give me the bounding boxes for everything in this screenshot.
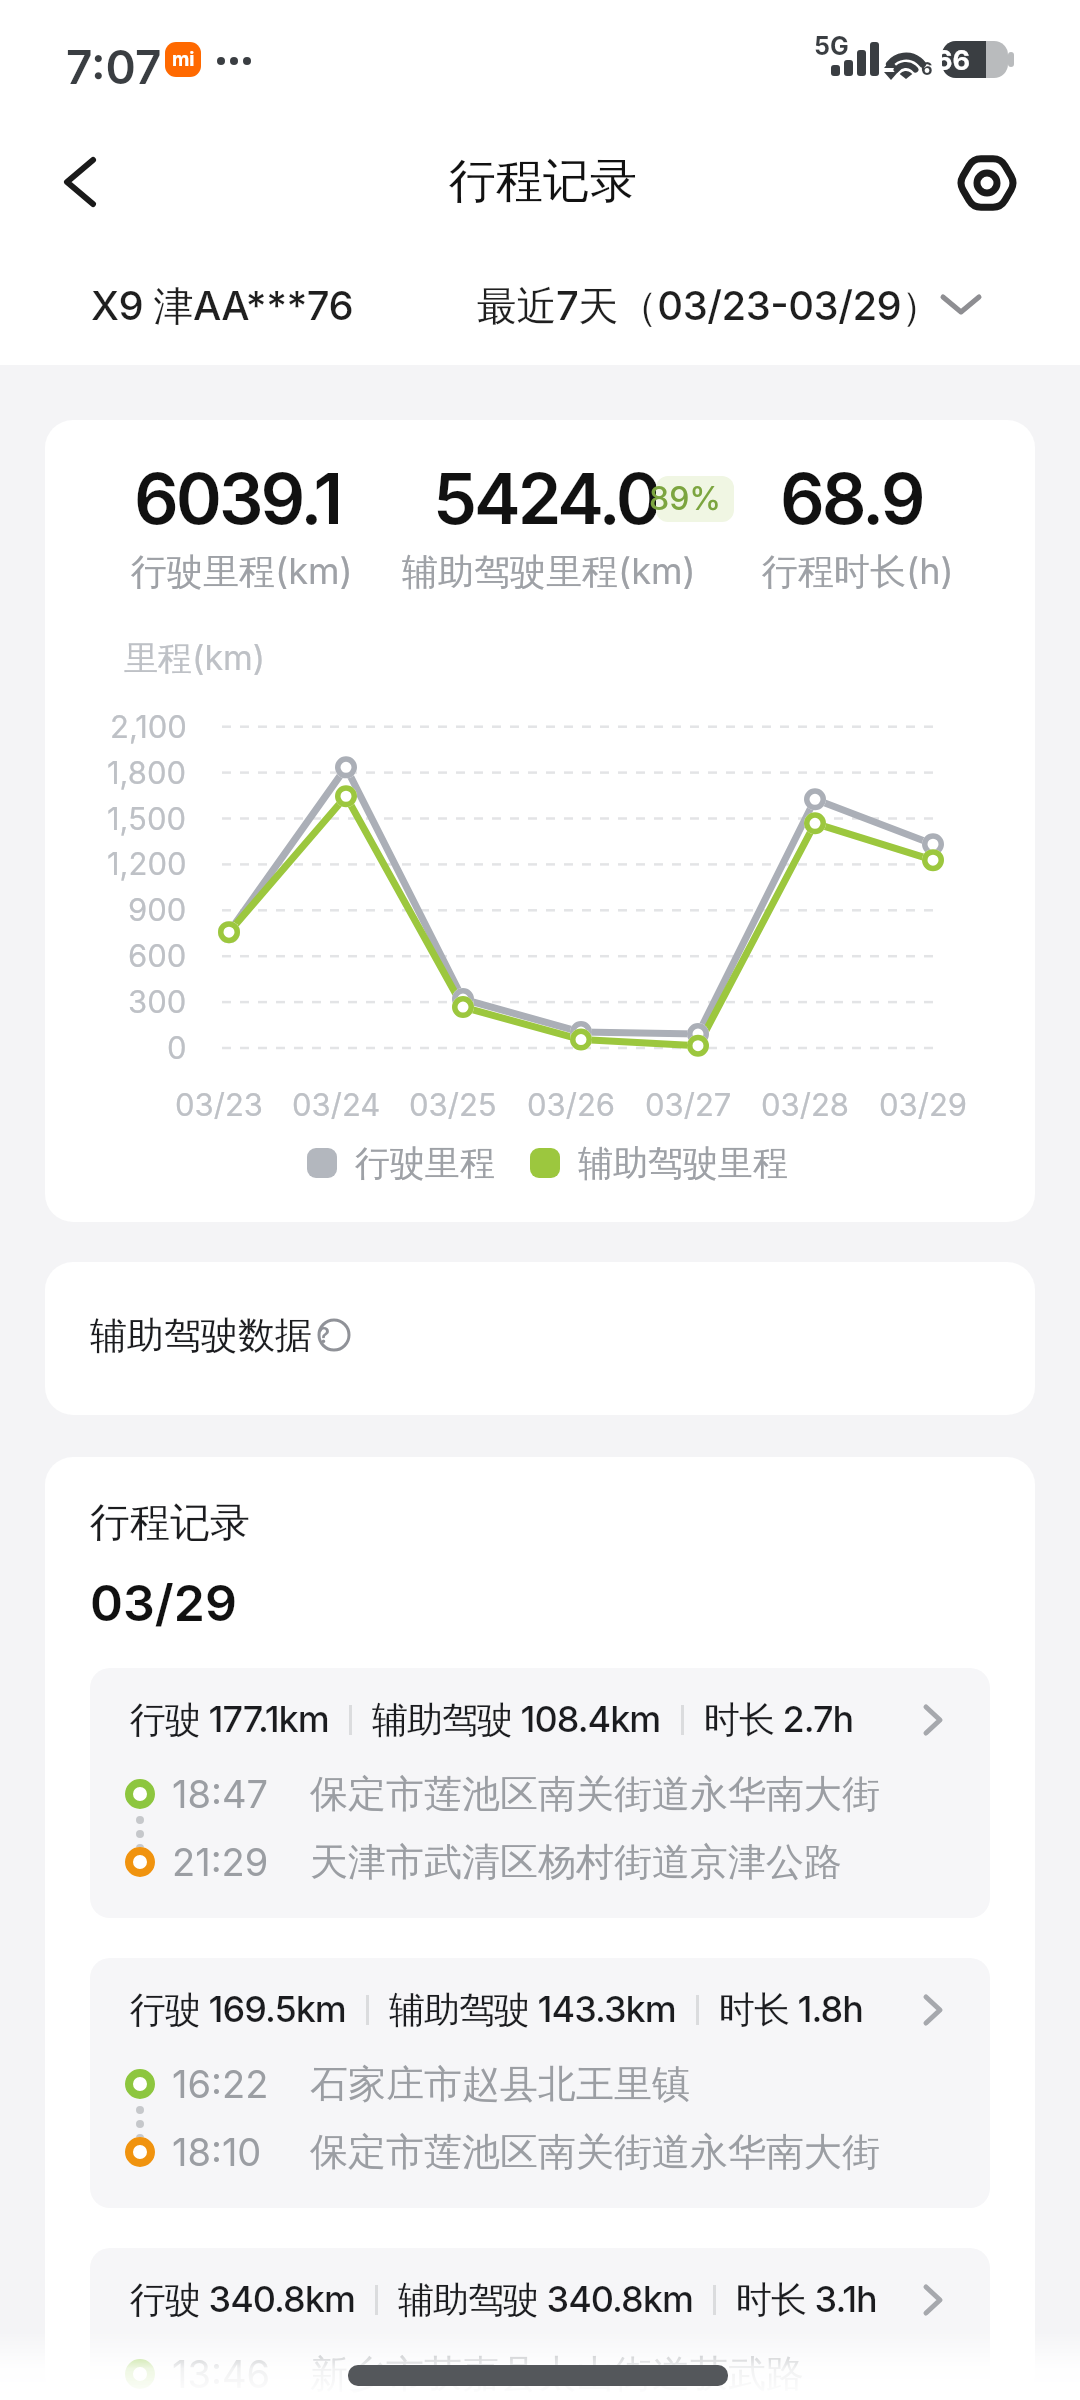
staticText: 行程时长(h): [762, 549, 954, 595]
staticText: 1,800: [107, 754, 187, 792]
button[interactable]: [90, 1668, 990, 1918]
button[interactable]: [957, 153, 1017, 213]
staticText: 辅助驾驶里程(km): [402, 549, 696, 595]
staticText: 03/29: [879, 1086, 968, 1124]
staticText: 辅助驾驶数据: [90, 1312, 312, 1359]
staticText: 21:29: [172, 1839, 269, 1885]
staticText: mi: [172, 48, 195, 71]
button[interactable]: [45, 1262, 1035, 1415]
staticText: 辅助驾驶 143.3km: [389, 1987, 676, 2033]
staticText: 辅助驾驶里程: [578, 1141, 788, 1185]
button[interactable]: [90, 1958, 990, 2208]
staticText: 0: [167, 1029, 187, 1067]
staticText: 时长 2.7h: [704, 1697, 854, 1743]
staticText: 时长 3.1h: [736, 2277, 877, 2323]
staticText: 5G: [814, 31, 849, 61]
button[interactable]: 最近7天（03/23-03/29）: [477, 256, 1080, 356]
staticText: 03/28: [761, 1086, 849, 1124]
staticText: 1,500: [107, 800, 187, 838]
staticText: 7:07: [66, 39, 162, 95]
staticText: 03/24: [292, 1086, 381, 1124]
staticText: 行驶 169.5km: [130, 1987, 346, 2033]
staticText: 03/27: [645, 1086, 732, 1124]
staticText: 600: [128, 937, 187, 975]
staticText: 5424.0: [433, 456, 659, 541]
staticText: 16:22: [172, 2061, 269, 2107]
staticText: 6: [921, 58, 933, 80]
staticText: 辅助驾驶 108.4km: [372, 1697, 661, 1743]
staticText: 天津市武清区杨村街道京津公路: [310, 1838, 842, 1886]
staticText: 里程(km): [124, 637, 266, 680]
staticText: 行程记录: [449, 152, 637, 211]
staticText: 行驶 340.8km: [130, 2277, 355, 2323]
staticText: 66: [935, 44, 971, 77]
staticText: 300: [128, 983, 187, 1021]
staticText: 900: [128, 891, 187, 929]
staticText: 03/25: [409, 1086, 497, 1124]
staticText: 时长 1.8h: [719, 1987, 863, 2033]
staticText: 18:47: [172, 1771, 268, 1817]
staticText: 石家庄市赵县北王里镇: [310, 2060, 690, 2108]
staticText: 2,100: [110, 708, 187, 746]
staticText: 行程记录: [90, 1497, 250, 1547]
staticText: ?: [318, 1322, 330, 1349]
staticText: 保定市莲池区南关街道永华南大街: [310, 2128, 880, 2176]
staticText: 68.9: [780, 456, 923, 541]
staticText: 13:46: [172, 2351, 270, 2397]
staticText: 新乡市获嘉县太山街道获武路: [310, 2350, 804, 2398]
button[interactable]: [90, 2248, 990, 2400]
staticText: 18:10: [172, 2129, 262, 2175]
button[interactable]: X9 津AA***76: [91, 256, 1080, 356]
staticText: 1,200: [107, 845, 187, 883]
staticText: 6039.1: [134, 456, 341, 541]
staticText: X9 津AA***76: [91, 281, 354, 332]
staticText: 行驶 177.1km: [130, 1697, 329, 1743]
staticText: 最近7天（03/23-03/29）: [477, 281, 941, 332]
staticText: 03/23: [175, 1086, 263, 1124]
staticText: 保定市莲池区南关街道永华南大街: [310, 1770, 880, 1818]
staticText: 03/29: [90, 1573, 237, 1633]
staticText: 行驶里程: [355, 1141, 495, 1185]
staticText: 行驶里程(km): [131, 549, 353, 595]
staticText: 03/26: [527, 1086, 616, 1124]
staticText: 辅助驾驶 340.8km: [398, 2277, 693, 2323]
staticText: 89%: [649, 479, 722, 518]
button[interactable]: [50, 153, 110, 211]
